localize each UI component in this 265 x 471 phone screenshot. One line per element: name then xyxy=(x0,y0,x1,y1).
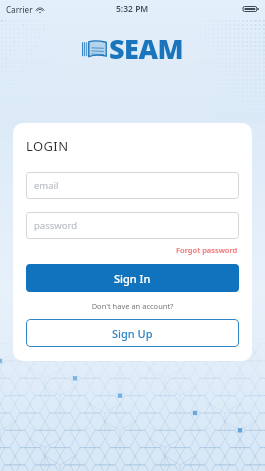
staticText: email xyxy=(34,179,59,192)
staticText: password xyxy=(34,219,78,232)
button[interactable]: Forgot password xyxy=(175,244,239,256)
staticText: Carrier xyxy=(6,4,33,15)
staticText: Don't have an account? xyxy=(26,301,239,311)
staticText: Sign Up xyxy=(112,326,153,341)
staticText: 5:32 PM xyxy=(116,3,149,15)
staticText: LOGIN xyxy=(26,137,69,155)
button[interactable]: password xyxy=(26,212,239,239)
staticText: SEAM xyxy=(109,30,184,67)
button[interactable]: Sign In xyxy=(26,264,239,292)
staticText: Forgot password xyxy=(176,245,238,255)
button[interactable]: Sign Up xyxy=(26,319,239,347)
staticText: Sign In xyxy=(114,271,151,286)
button[interactable]: email xyxy=(26,172,239,199)
